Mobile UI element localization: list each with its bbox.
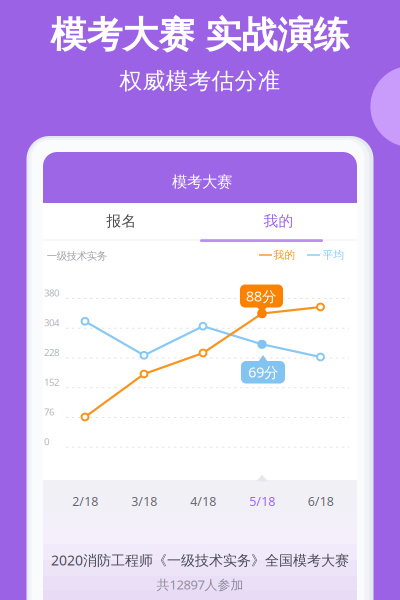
staticText: 我的 — [273, 248, 295, 262]
staticText: 一级技术实务 — [47, 249, 107, 262]
staticText: 5/18 — [249, 493, 275, 510]
staticText: 6/18 — [308, 493, 334, 510]
staticText: 权威模考估分准 — [119, 67, 280, 95]
staticText: 88分 — [246, 286, 276, 306]
staticText: 模考大赛 实战演练 — [50, 12, 349, 58]
staticText: 共12897人参加 — [156, 576, 243, 593]
button[interactable]: 3/18 — [0, 0, 400, 600]
staticText: 模考大赛 — [172, 172, 232, 192]
staticText: 304 — [44, 316, 59, 329]
staticText: 4/18 — [190, 493, 216, 510]
staticText: 228 — [44, 346, 59, 359]
staticText: 152 — [44, 375, 59, 388]
staticText: 3/18 — [131, 493, 157, 510]
staticText: 2020消防工程师《一级技术实务》全国模考大赛 — [51, 550, 349, 570]
button[interactable]: 2/18 — [0, 0, 400, 600]
button[interactable]: 6/18 — [0, 0, 400, 600]
staticText: 380 — [44, 286, 59, 299]
staticText: 76 — [44, 405, 54, 418]
staticText: 69分 — [248, 362, 278, 382]
button[interactable]: 我的 — [0, 0, 400, 600]
button[interactable]: 5/18 — [0, 0, 400, 600]
button[interactable]: 报名 — [0, 0, 400, 600]
staticText: 平均 — [322, 248, 344, 262]
staticText: 我的 — [263, 212, 293, 230]
button[interactable]: 4/18 — [0, 0, 400, 600]
staticText: 2/18 — [72, 493, 98, 510]
staticText: 0 — [44, 435, 49, 448]
staticText: 报名 — [106, 212, 136, 230]
